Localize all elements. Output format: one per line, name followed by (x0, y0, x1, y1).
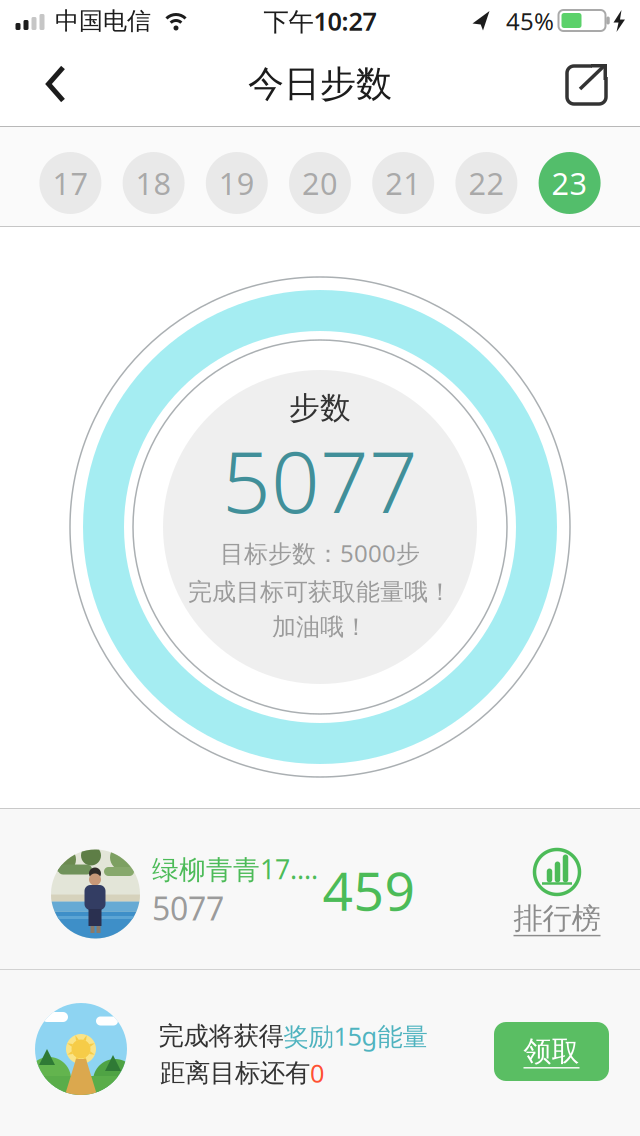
staticText: 完成将获得 (158, 1020, 283, 1051)
button[interactable]: Share (557, 54, 617, 114)
staticText: 21 (385, 163, 421, 203)
staticText: 加油哦！ (272, 612, 368, 642)
staticText: 中国电信 (55, 6, 151, 36)
staticText: 5077 (222, 423, 418, 537)
button[interactable]: 22 (455, 152, 517, 214)
staticText: 目标步数：5000步 (220, 537, 420, 569)
button[interactable]: 19 (206, 152, 268, 214)
staticText: 距离目标还有 (160, 1057, 310, 1088)
button[interactable]: 20 (289, 152, 351, 214)
staticText: 下午10:27 (263, 4, 376, 38)
staticText: 22 (468, 163, 504, 203)
staticText: 步数 (289, 389, 351, 427)
staticText: 领取 (523, 1034, 579, 1069)
staticText: 绿柳青青17.... (152, 851, 318, 887)
staticText: 23 (552, 163, 588, 203)
button[interactable]: 领取 (494, 1022, 609, 1081)
button[interactable]: 18 (123, 152, 185, 214)
staticText: 45% (506, 5, 554, 37)
button[interactable]: 23 (539, 152, 601, 214)
staticText: 今日步数 (248, 62, 392, 106)
staticText: 17 (52, 163, 88, 203)
button[interactable]: 21 (372, 152, 434, 214)
button[interactable]: Back (32, 53, 80, 114)
staticText: 459 (322, 855, 415, 925)
staticText: 奖励15g能量 (283, 1019, 427, 1053)
button[interactable]: 排行榜 (513, 849, 600, 936)
staticText: 0 (310, 1056, 324, 1090)
staticText: 18 (136, 163, 172, 203)
button[interactable]: 17 (39, 152, 101, 214)
staticText: 19 (219, 163, 255, 203)
staticText: 20 (302, 163, 338, 203)
staticText: 排行榜 (513, 900, 600, 936)
staticText: 完成目标可获取能量哦！ (188, 577, 452, 607)
staticText: 5077 (152, 887, 224, 929)
